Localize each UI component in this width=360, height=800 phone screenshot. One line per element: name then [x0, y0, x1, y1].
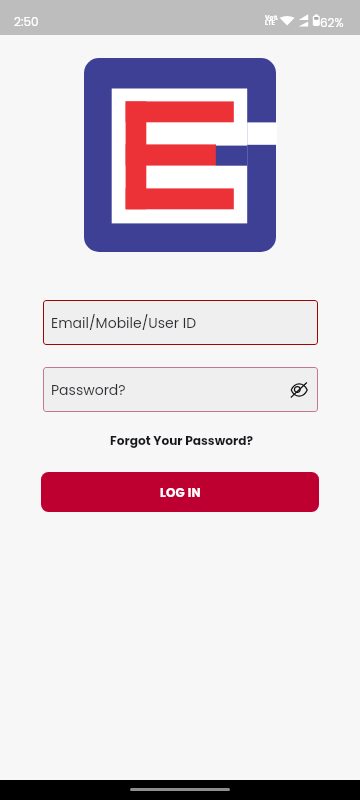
button[interactable]: Forgot Your Password? [2, 429, 360, 451]
staticText: Password? [51, 380, 126, 400]
button[interactable]: Password? [43, 367, 318, 412]
staticText: 2:50 [14, 13, 39, 30]
staticText: Email/Mobile/User ID [51, 313, 197, 333]
button[interactable]: Show password [287, 378, 311, 402]
button[interactable]: Email/Mobile/User ID [43, 300, 318, 345]
staticText: LOG IN [160, 484, 201, 501]
staticText: Vo⇅ [265, 14, 279, 22]
staticText: LTE [265, 19, 275, 27]
staticText: 62% [320, 14, 344, 31]
staticText: Forgot Your Password? [110, 432, 254, 449]
button[interactable]: LOG IN [41, 472, 319, 512]
